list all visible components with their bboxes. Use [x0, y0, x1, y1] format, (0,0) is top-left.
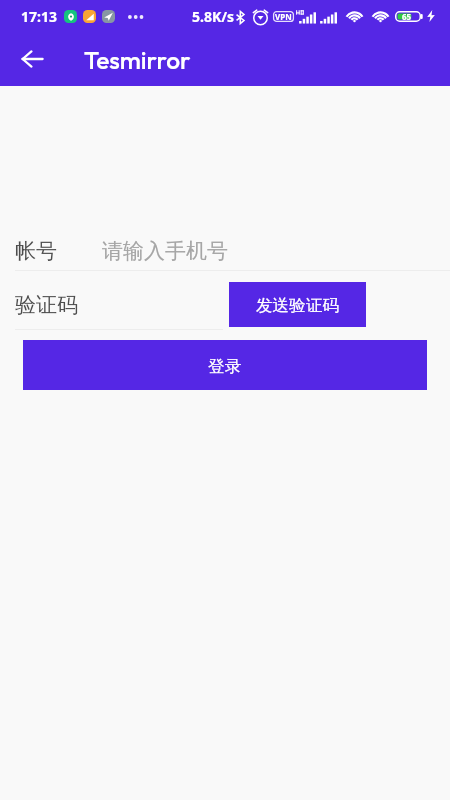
button[interactable]: 验证码	[0, 281, 450, 329]
staticText: VPN	[275, 11, 292, 22]
button[interactable]: 发送验证码	[229, 282, 366, 327]
button[interactable]: 登录	[23, 340, 427, 390]
button[interactable]: Back	[10, 37, 54, 81]
staticText: 请输入手机号	[102, 238, 228, 264]
staticText: 验证码	[15, 292, 78, 318]
staticText: 5.8K/s	[192, 7, 235, 26]
staticText: 帐号	[15, 238, 57, 264]
staticText: 17:13	[21, 7, 57, 26]
staticText: Tesmirror	[84, 44, 191, 75]
staticText: 发送验证码	[256, 295, 339, 316]
staticText: 65	[402, 11, 412, 22]
staticText: 登录	[208, 356, 242, 377]
button[interactable]: 帐号	[0, 229, 450, 272]
